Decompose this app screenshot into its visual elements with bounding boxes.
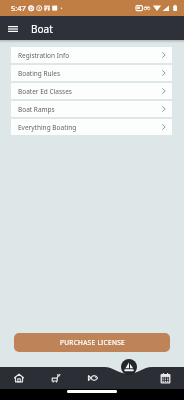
button[interactable]: Home	[0, 367, 37, 389]
staticText: Boat Ramps	[18, 105, 55, 114]
button[interactable]: Hunting	[37, 367, 74, 389]
staticText: Boater Ed Classes	[18, 87, 72, 96]
staticText: Boating Rules	[18, 69, 61, 78]
button[interactable]: Fishing	[74, 367, 111, 389]
staticText: 5:47	[11, 3, 26, 13]
button[interactable]: PURCHASE LICENSE	[14, 333, 170, 352]
staticText: Boat	[31, 22, 53, 36]
button[interactable]: Open navigation menu	[3, 19, 22, 38]
button[interactable]: Boater Ed Classes	[11, 83, 172, 99]
button[interactable]: Registration Info	[11, 47, 172, 63]
button[interactable]: Everything Boating	[11, 119, 172, 135]
staticText: Everything Boating	[18, 123, 77, 132]
button[interactable]: Events	[147, 367, 184, 389]
staticText: PURCHASE LICENSE	[60, 338, 125, 347]
staticText: Registration Info	[18, 51, 70, 60]
button[interactable]: Boating	[121, 359, 137, 375]
button[interactable]: Boating Rules	[11, 65, 172, 81]
button[interactable]: Boat Ramps	[11, 101, 172, 117]
